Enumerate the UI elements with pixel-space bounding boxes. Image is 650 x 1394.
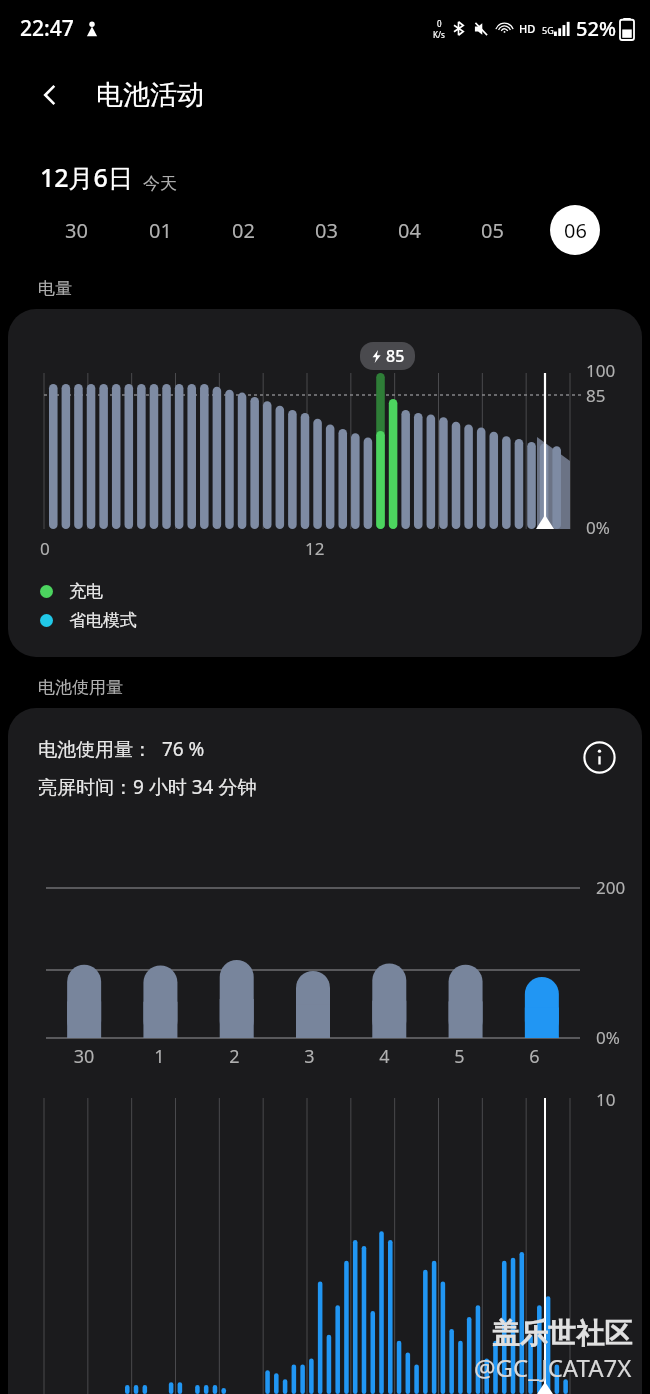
- button[interactable]: 02: [201, 199, 284, 261]
- staticText: HD: [519, 21, 536, 36]
- staticText: 22:47: [20, 14, 74, 43]
- staticText: 电池使用量: [38, 677, 123, 698]
- staticText: 电池使用量： 76 %: [38, 736, 205, 762]
- button[interactable]: 01: [118, 199, 201, 261]
- staticText: 省电模式: [69, 610, 137, 631]
- staticText: 3: [272, 1044, 347, 1069]
- staticText: 200: [596, 876, 626, 899]
- staticText: 06: [564, 217, 587, 244]
- staticText: 6: [497, 1044, 572, 1069]
- button[interactable]: 电池使用量： 76 %: [8, 708, 642, 1394]
- staticText: 0%: [586, 516, 610, 539]
- staticText: 85: [386, 345, 405, 367]
- staticText: 今天: [143, 173, 177, 194]
- staticText: 100: [586, 359, 616, 382]
- button[interactable]: 06: [533, 199, 616, 261]
- staticText: 30: [65, 217, 88, 244]
- staticText: 04: [398, 217, 421, 244]
- staticText: 0: [437, 18, 442, 29]
- staticText: 12月6日: [40, 160, 133, 194]
- staticText: 2: [197, 1044, 272, 1069]
- staticText: @GC_JCATA7X: [474, 1351, 632, 1384]
- staticText: 03: [315, 217, 338, 244]
- staticText: 亮屏时间：9 小时 34 分钟: [38, 774, 257, 800]
- button[interactable]: 03: [284, 199, 367, 261]
- staticText: 电量: [38, 278, 72, 299]
- staticText: 52%: [576, 15, 616, 42]
- button[interactable]: 100: [8, 309, 642, 657]
- staticText: 12: [305, 537, 325, 560]
- staticText: 85: [586, 384, 606, 407]
- staticText: 02: [232, 217, 255, 244]
- button[interactable]: 04: [367, 199, 450, 261]
- staticText: 30: [46, 1044, 122, 1069]
- staticText: 5: [422, 1044, 497, 1069]
- staticText: K/s: [433, 29, 445, 40]
- button[interactable]: Info: [578, 736, 620, 778]
- staticText: 0%: [596, 1026, 620, 1049]
- button[interactable]: 30: [34, 199, 118, 261]
- staticText: 5G: [542, 24, 554, 36]
- staticText: 01: [149, 217, 172, 244]
- staticText: 1: [122, 1044, 197, 1069]
- staticText: 电池活动: [96, 78, 204, 112]
- staticText: 0: [40, 537, 50, 560]
- staticText: 充电: [69, 581, 103, 602]
- staticText: 10: [596, 1088, 616, 1111]
- staticText: 盖乐世社区: [492, 1316, 632, 1351]
- staticText: 4: [347, 1044, 422, 1069]
- staticText: 05: [481, 217, 504, 244]
- button[interactable]: 05: [450, 199, 533, 261]
- button[interactable]: Back: [26, 71, 74, 119]
